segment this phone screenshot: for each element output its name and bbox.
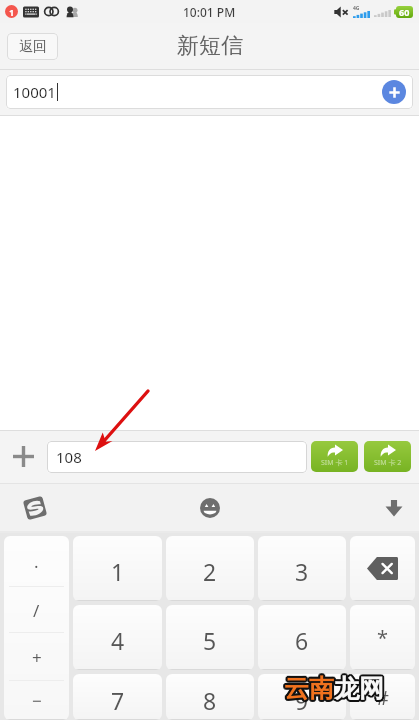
button[interactable]: 7 — [73, 674, 162, 720]
staticText: 云南龙网 — [283, 674, 383, 705]
button[interactable]: 2 — [166, 536, 254, 601]
staticText: 云南龙网 — [285, 672, 385, 703]
staticText: 云南龙网 — [286, 673, 386, 704]
button[interactable]: 9 — [258, 674, 346, 720]
staticText: . — [34, 550, 39, 573]
staticText: 4G — [353, 5, 360, 12]
staticText: 7 — [111, 685, 125, 716]
button[interactable]: Backspace — [350, 536, 415, 601]
staticText: 云南龙网 — [284, 675, 384, 706]
button[interactable]: SIM 卡 1 — [311, 441, 358, 472]
staticText: 云南 — [284, 673, 334, 704]
staticText: 2 — [203, 556, 217, 587]
staticText: 云南龙网 — [286, 674, 386, 705]
button[interactable]: / — [4, 587, 69, 633]
button[interactable]: Add recipient — [382, 80, 406, 104]
button[interactable]: − — [4, 681, 69, 720]
button[interactable]: 3 — [258, 536, 346, 601]
button[interactable]: # — [350, 674, 415, 720]
staticText: 云南龙网 — [283, 671, 383, 702]
staticText: 1 — [111, 556, 125, 587]
staticText: 云南龙网 — [285, 674, 385, 705]
staticText: 云南龙网 — [284, 671, 384, 702]
staticText: 云南龙网 — [284, 672, 384, 703]
button[interactable]: 4 — [73, 605, 162, 670]
staticText: − — [32, 689, 42, 712]
staticText: 3 — [295, 556, 309, 587]
button[interactable]: 返回 — [7, 33, 58, 60]
button[interactable]: Hide keyboard — [375, 489, 413, 527]
staticText: 云南龙网 — [283, 672, 383, 703]
staticText: 云南龙网 — [282, 673, 382, 704]
staticText: 5 — [203, 625, 217, 656]
staticText: 龙网 — [334, 673, 384, 704]
staticText: 新短信 — [177, 32, 243, 60]
staticText: # — [376, 684, 389, 711]
staticText: + — [32, 646, 42, 669]
button[interactable]: 108 — [47, 441, 307, 473]
staticText: 8 — [203, 685, 217, 716]
button[interactable]: 8 — [166, 674, 254, 720]
staticText: 云南龙网 — [285, 673, 385, 704]
staticText: * — [377, 624, 389, 651]
button[interactable]: Attach — [0, 430, 47, 483]
button[interactable]: Emoji — [191, 489, 229, 527]
staticText: 1 — [9, 6, 15, 18]
button[interactable]: SIM 卡 2 — [364, 441, 411, 472]
staticText: 云南龙网 — [286, 672, 386, 703]
staticText: 108 — [56, 447, 82, 467]
staticText: 6 — [295, 625, 309, 656]
staticText: 云南龙网 — [285, 675, 385, 706]
staticText: 返回 — [19, 38, 47, 56]
button[interactable]: 6 — [258, 605, 346, 670]
staticText: 60 — [399, 6, 410, 18]
staticText: 云南龙网 — [282, 672, 382, 703]
button[interactable]: 1 — [73, 536, 162, 601]
button[interactable]: 5 — [166, 605, 254, 670]
staticText: SIM 卡 2 — [374, 458, 402, 468]
staticText: 云南龙网 — [283, 675, 383, 706]
staticText: 云南龙网 — [285, 671, 385, 702]
button[interactable]: 10001 — [6, 75, 413, 109]
staticText: 云南龙网 — [282, 674, 382, 705]
button[interactable]: Input method — [16, 489, 54, 527]
staticText: 云南龙网 — [283, 673, 383, 704]
staticText: 4 — [111, 625, 125, 656]
button[interactable]: + — [4, 633, 69, 681]
staticText: SIM 卡 1 — [321, 458, 349, 468]
staticText: 10:01 PM — [183, 4, 236, 20]
staticText: / — [33, 599, 40, 622]
staticText: 云南龙网 — [284, 674, 384, 705]
button[interactable]: . — [4, 536, 69, 720]
button[interactable]: * — [350, 605, 415, 670]
button[interactable]: . — [4, 536, 69, 587]
staticText: 10001 — [13, 82, 56, 102]
staticText: 9 — [295, 685, 309, 716]
